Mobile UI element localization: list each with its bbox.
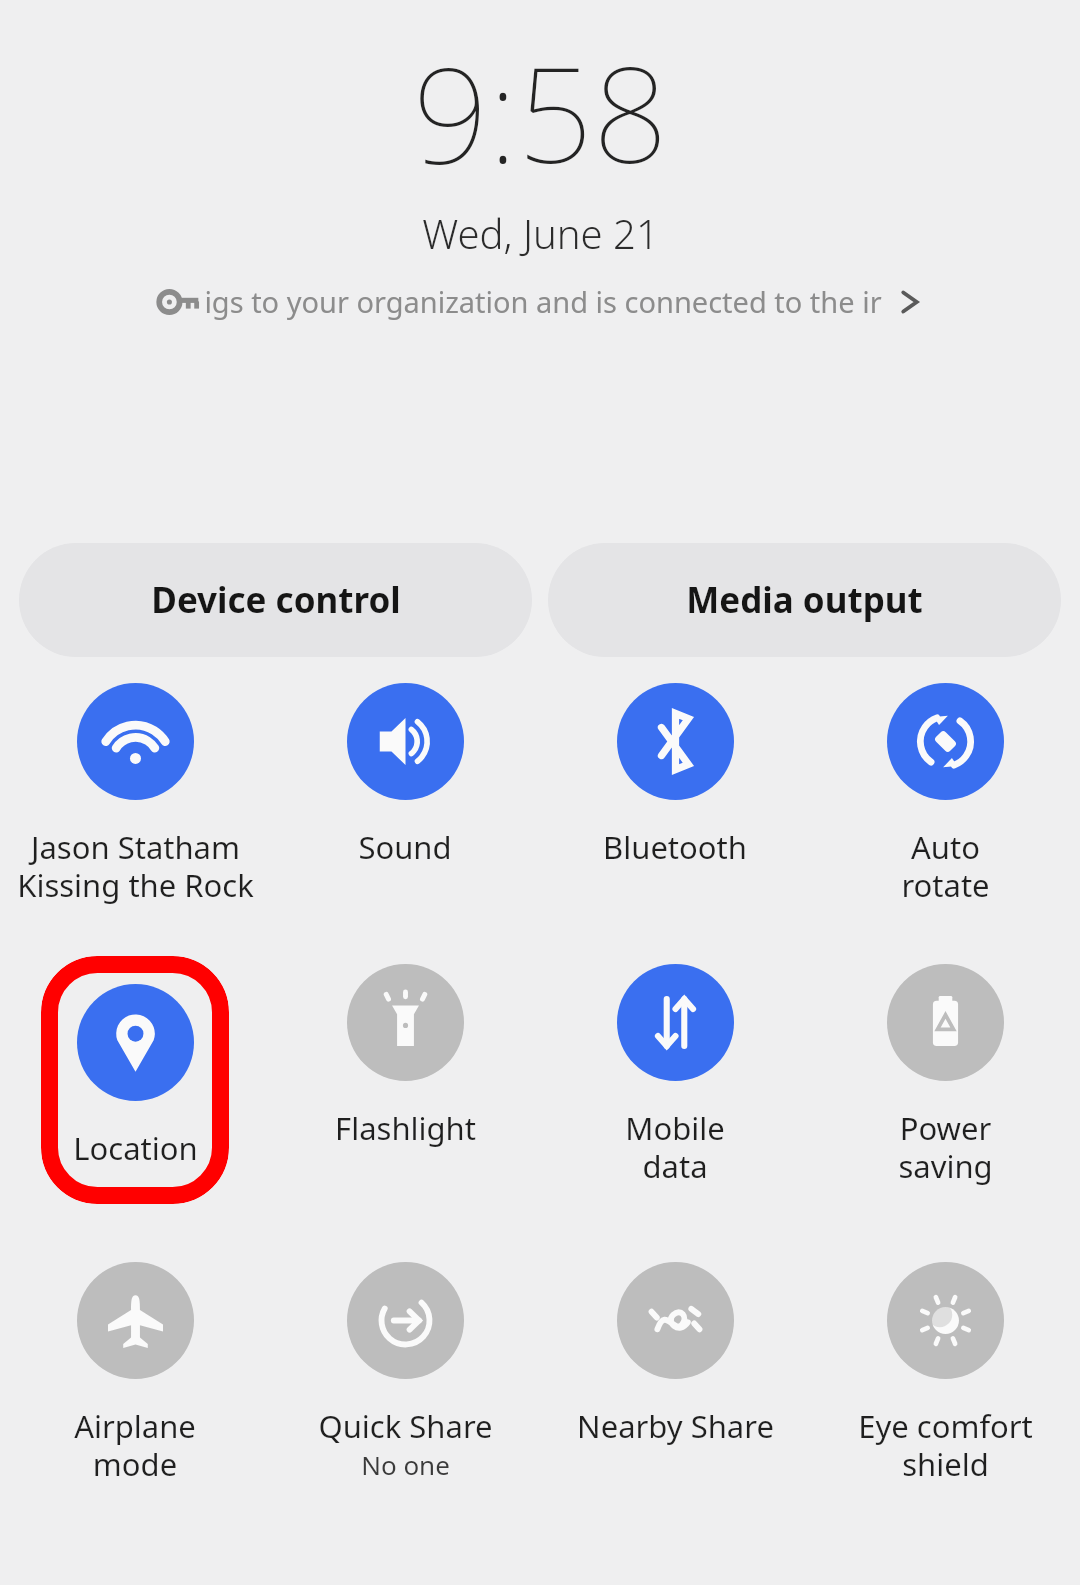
staticText: Airplane mode: [74, 1405, 196, 1485]
staticText: No one: [361, 1447, 450, 1482]
button[interactable]: Quick Share: [270, 1254, 540, 1482]
staticText: Bluetooth: [603, 826, 747, 868]
button[interactable]: Nearby Share: [540, 1254, 810, 1447]
button[interactable]: Mobile data: [540, 956, 810, 1187]
button[interactable]: Jason Statham Kissing the Rock: [0, 675, 270, 906]
button[interactable]: Auto rotate: [810, 675, 1080, 906]
staticText: Sound: [358, 826, 452, 868]
staticText: Nearby Share: [577, 1405, 774, 1447]
button[interactable]: Flashlight: [270, 956, 540, 1149]
staticText: Wed, June 21: [422, 206, 659, 260]
staticText: Location: [73, 1127, 198, 1169]
staticText: Eye comfort shield: [858, 1405, 1033, 1485]
staticText: Jason Statham Kissing the Rock: [17, 826, 254, 906]
staticText: Device control: [151, 576, 401, 624]
staticText: Mobile data: [625, 1107, 725, 1187]
button[interactable]: Airplane mode: [0, 1254, 270, 1485]
staticText: Quick Share: [318, 1405, 493, 1447]
button[interactable]: Sound: [270, 675, 540, 868]
staticText: Flashlight: [335, 1107, 476, 1149]
staticText: Media output: [686, 576, 923, 624]
button[interactable]: Location: [41, 956, 229, 1204]
staticText: Auto rotate: [901, 826, 990, 906]
button[interactable]: igs to your organization and is connecte…: [0, 276, 1080, 327]
staticText: 9:58: [413, 22, 668, 202]
button[interactable]: Eye comfort shield: [810, 1254, 1080, 1485]
staticText: Power saving: [898, 1107, 993, 1187]
button[interactable]: Bluetooth: [540, 675, 810, 868]
button[interactable]: Power saving: [810, 956, 1080, 1187]
button[interactable]: Device control: [19, 543, 532, 657]
staticText: igs to your organization and is connecte…: [204, 282, 882, 321]
button[interactable]: Media output: [548, 543, 1061, 657]
